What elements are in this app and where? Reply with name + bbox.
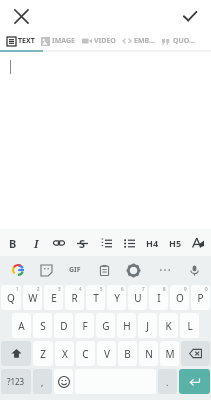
staticText: 2	[37, 286, 40, 292]
button[interactable]: Voice input	[184, 260, 204, 280]
staticText: H4	[146, 237, 159, 249]
button[interactable]: Z	[33, 341, 53, 366]
button[interactable]: Highlight	[188, 233, 208, 253]
button[interactable]: B	[118, 341, 137, 366]
button[interactable]: Emoji	[54, 369, 73, 394]
button[interactable]: M	[160, 341, 179, 366]
button[interactable]: Period	[158, 369, 177, 394]
staticText: X	[62, 347, 68, 361]
button[interactable]: Settings	[123, 260, 143, 280]
staticText: I	[157, 291, 161, 305]
button[interactable]: D	[54, 313, 73, 338]
staticText: I	[34, 236, 39, 251]
staticText: S	[79, 236, 86, 251]
staticText: M	[165, 347, 175, 361]
button[interactable]: Heading 5	[165, 233, 185, 253]
button[interactable]: N	[139, 341, 158, 366]
staticText: N	[145, 347, 153, 361]
button[interactable]: EMB…	[122, 36, 156, 46]
staticText: 5	[100, 286, 103, 292]
button[interactable]: TEXT	[7, 36, 35, 46]
staticText: Y	[114, 291, 120, 305]
button[interactable]: Link	[49, 233, 69, 253]
button[interactable]: W	[23, 285, 42, 310]
staticText: 9	[184, 286, 187, 292]
button[interactable]: I	[149, 285, 168, 310]
staticText: H5	[169, 237, 182, 249]
button[interactable]: C	[76, 341, 95, 366]
button[interactable]: Strikethrough	[72, 233, 92, 253]
button[interactable]: Enter	[179, 369, 210, 394]
staticText: 1	[16, 286, 19, 292]
button[interactable]: E	[44, 285, 63, 310]
button[interactable]: J	[138, 313, 157, 338]
staticText: 8	[163, 286, 166, 292]
button[interactable]: Clipboard	[94, 260, 114, 280]
staticText: R	[71, 291, 78, 305]
button[interactable]: Backspace	[181, 341, 210, 366]
button[interactable]: P	[191, 285, 210, 310]
staticText: 0	[205, 286, 208, 292]
button[interactable]: QUO…	[162, 36, 196, 46]
button[interactable]: Heading 4	[142, 233, 162, 253]
staticText: K	[165, 319, 172, 333]
button[interactable]: Bullet list	[119, 233, 139, 253]
button[interactable]: Stickers	[36, 260, 56, 280]
staticText: 6	[121, 286, 124, 292]
button[interactable]: A	[12, 313, 31, 338]
button[interactable]: Italic	[26, 233, 46, 253]
staticText: E	[51, 291, 57, 305]
button[interactable]: O	[170, 285, 189, 310]
button[interactable]: Y	[107, 285, 126, 310]
button[interactable]: Comma	[33, 369, 52, 394]
button[interactable]: Shift	[1, 341, 31, 366]
staticText: .	[166, 376, 169, 388]
button[interactable]: Google	[8, 260, 28, 280]
button[interactable]: Symbols	[1, 369, 31, 394]
staticText: TEXT	[18, 36, 35, 46]
staticText: 4	[79, 286, 82, 292]
button[interactable]: Bold	[3, 233, 23, 253]
staticText: F	[82, 319, 88, 333]
staticText: T	[93, 291, 99, 305]
button[interactable]: F	[75, 313, 94, 338]
button[interactable]: Save	[175, 1, 205, 31]
staticText: ,	[41, 376, 44, 388]
button[interactable]: G	[96, 313, 115, 338]
button[interactable]: VIDEO	[82, 36, 116, 46]
staticText: EMB…	[134, 36, 156, 46]
staticText: 3	[58, 286, 61, 292]
staticText: H	[123, 319, 131, 333]
button[interactable]: Close	[6, 1, 36, 31]
staticText: W	[28, 291, 38, 305]
staticText: C	[82, 347, 89, 361]
button[interactable]: T	[86, 285, 105, 310]
button[interactable]: L	[180, 313, 199, 338]
button[interactable]: Numbered list	[96, 233, 116, 253]
staticText: D	[60, 319, 68, 333]
staticText: U	[134, 291, 142, 305]
button[interactable]: H	[117, 313, 136, 338]
staticText: O	[176, 291, 184, 305]
button[interactable]: K	[159, 313, 178, 338]
button[interactable]: IMAGE	[41, 36, 76, 46]
staticText: 7	[142, 286, 145, 292]
button[interactable]: GIF	[65, 260, 85, 280]
staticText: G	[102, 319, 110, 333]
button[interactable]: U	[128, 285, 147, 310]
staticText: L	[187, 319, 193, 333]
staticText: ?123	[7, 376, 25, 387]
button[interactable]: R	[65, 285, 84, 310]
button[interactable]: V	[97, 341, 116, 366]
staticText: S	[40, 319, 46, 333]
button[interactable]: S	[33, 313, 52, 338]
staticText: B	[124, 347, 131, 361]
button[interactable]: More options	[155, 260, 175, 280]
staticText: Z	[40, 347, 46, 361]
staticText: J	[146, 319, 149, 333]
staticText: B	[9, 236, 17, 251]
staticText: V	[104, 347, 110, 361]
button[interactable]: Q	[1, 285, 21, 310]
button[interactable]: X	[55, 341, 74, 366]
